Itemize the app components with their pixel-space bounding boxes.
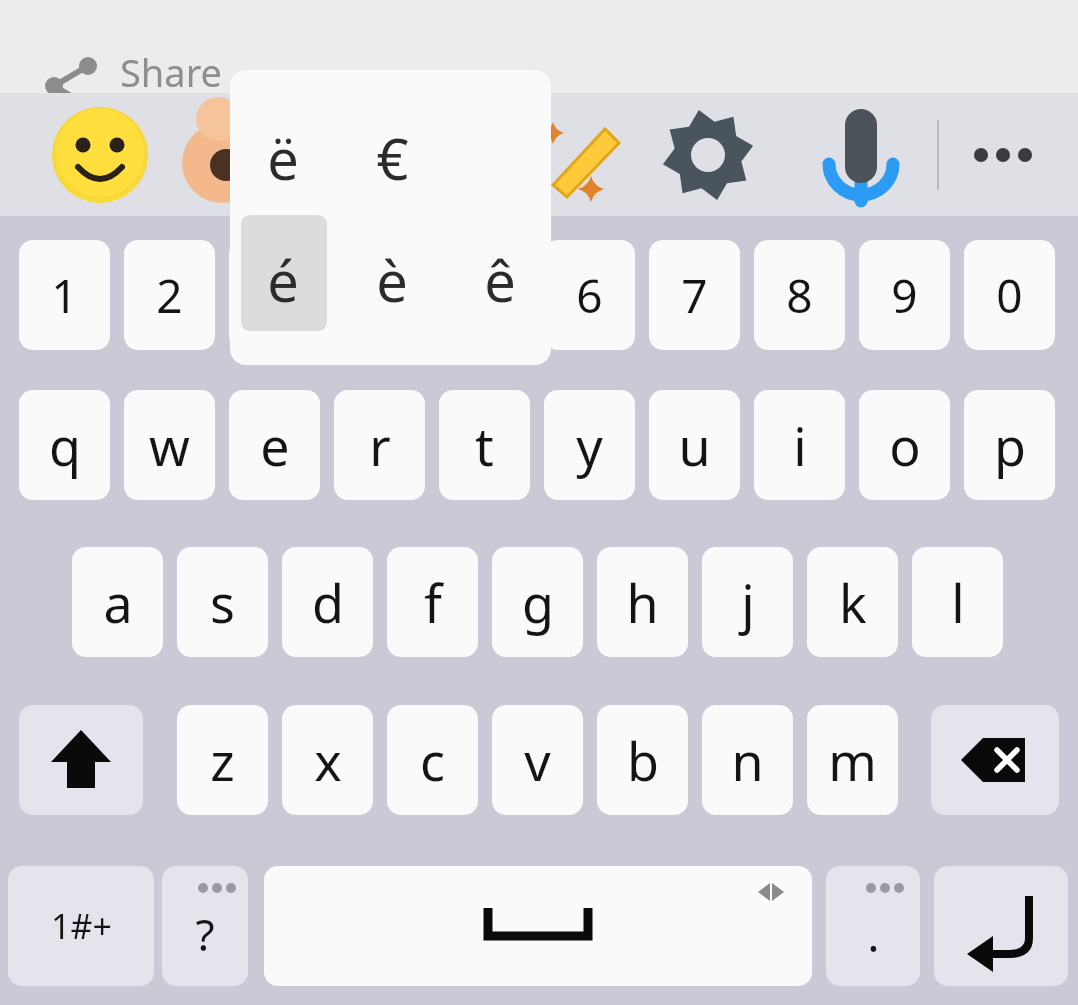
staticText: b	[627, 725, 659, 796]
staticText: t	[475, 410, 494, 481]
staticText: p	[994, 410, 1026, 481]
button[interactable]: h	[597, 547, 688, 657]
staticText: g	[522, 567, 554, 638]
staticText: ë	[267, 120, 299, 196]
button[interactable]: o	[859, 390, 950, 500]
button[interactable]: Enter	[934, 866, 1068, 986]
button[interactable]: €	[347, 103, 437, 213]
staticText: r	[369, 410, 391, 481]
staticText: è	[376, 242, 408, 318]
staticText: .	[867, 903, 880, 966]
button[interactable]: i	[754, 390, 845, 500]
button[interactable]: p	[964, 390, 1055, 500]
button[interactable]: r	[334, 390, 425, 500]
button[interactable]: k	[807, 547, 898, 657]
staticText: 8	[786, 264, 813, 327]
button[interactable]: 1#+	[8, 866, 154, 986]
button[interactable]: ë	[238, 103, 328, 213]
staticText: 4	[366, 264, 393, 327]
button[interactable]: x	[282, 705, 373, 815]
staticText: 1	[51, 264, 78, 327]
staticText: l	[951, 567, 965, 638]
button[interactable]: Shift	[19, 705, 143, 815]
button[interactable]: Voice input	[806, 100, 916, 210]
button[interactable]: è	[347, 225, 437, 335]
button[interactable]: m	[807, 705, 898, 815]
staticText: j	[741, 567, 755, 638]
staticText: ê	[484, 242, 516, 318]
button[interactable]: u	[649, 390, 740, 500]
button[interactable]: f	[387, 547, 478, 657]
button[interactable]: j	[702, 547, 793, 657]
button[interactable]: e	[229, 390, 320, 500]
staticText: i	[793, 410, 807, 481]
staticText: c	[420, 725, 445, 796]
staticText: s	[210, 567, 235, 638]
staticText: Share	[120, 46, 223, 96]
button[interactable]: Emoji	[45, 100, 155, 210]
button[interactable]: c	[387, 705, 478, 815]
button[interactable]: .	[826, 866, 920, 986]
staticText: 0	[996, 264, 1023, 327]
staticText: 3	[261, 264, 288, 327]
button[interactable]: 0	[964, 240, 1055, 350]
staticText: n	[731, 725, 764, 796]
button[interactable]: 2	[124, 240, 215, 350]
button[interactable]: Space	[264, 866, 812, 986]
staticText: a	[103, 567, 133, 638]
button[interactable]: Share	[40, 46, 240, 96]
staticText: v	[524, 725, 551, 796]
staticText: w	[149, 410, 190, 481]
button[interactable]: z	[177, 705, 268, 815]
button[interactable]: Stickers	[167, 100, 277, 210]
button[interactable]: 5	[439, 240, 530, 350]
staticText: q	[49, 410, 81, 481]
button[interactable]: q	[19, 390, 110, 500]
button[interactable]: 9	[859, 240, 950, 350]
button[interactable]: g	[492, 547, 583, 657]
button[interactable]: t	[439, 390, 530, 500]
button[interactable]: 1	[19, 240, 110, 350]
button[interactable]: More options	[948, 100, 1058, 210]
staticText: 1#+	[51, 903, 112, 949]
staticText: 7	[681, 264, 708, 327]
staticText: d	[312, 567, 344, 638]
staticText: 9	[891, 264, 918, 327]
staticText: k	[839, 567, 867, 638]
staticText: u	[678, 410, 711, 481]
button[interactable]: 8	[754, 240, 845, 350]
staticText: y	[576, 410, 603, 481]
button[interactable]: v	[492, 705, 583, 815]
staticText: z	[210, 725, 235, 796]
staticText: 5	[471, 264, 498, 327]
button[interactable]: Backspace	[931, 705, 1059, 815]
staticText: e	[260, 410, 290, 481]
staticText: f	[424, 567, 442, 638]
button[interactable]: ?	[162, 866, 248, 986]
button[interactable]: 3	[229, 240, 320, 350]
staticText: €	[376, 120, 409, 196]
staticText: o	[889, 410, 921, 481]
button[interactable]: n	[702, 705, 793, 815]
button[interactable]: 6	[544, 240, 635, 350]
staticText: 6	[576, 264, 603, 327]
button[interactable]: ê	[455, 225, 545, 335]
button[interactable]: Settings	[653, 100, 763, 210]
button[interactable]: d	[282, 547, 373, 657]
button[interactable]: 4	[334, 240, 425, 350]
button[interactable]: b	[597, 705, 688, 815]
staticText: é	[267, 242, 299, 318]
button[interactable]: y	[544, 390, 635, 500]
button[interactable]: é	[238, 225, 328, 335]
button[interactable]: a	[72, 547, 163, 657]
staticText: x	[314, 725, 342, 796]
button[interactable]: Magic compose	[530, 100, 640, 210]
button[interactable]: w	[124, 390, 215, 500]
button[interactable]: l	[912, 547, 1003, 657]
button[interactable]: 7	[649, 240, 740, 350]
button[interactable]: s	[177, 547, 268, 657]
staticText: ?	[195, 904, 215, 964]
staticText: 2	[156, 264, 183, 327]
staticText: m	[828, 725, 877, 796]
staticText: h	[626, 567, 659, 638]
